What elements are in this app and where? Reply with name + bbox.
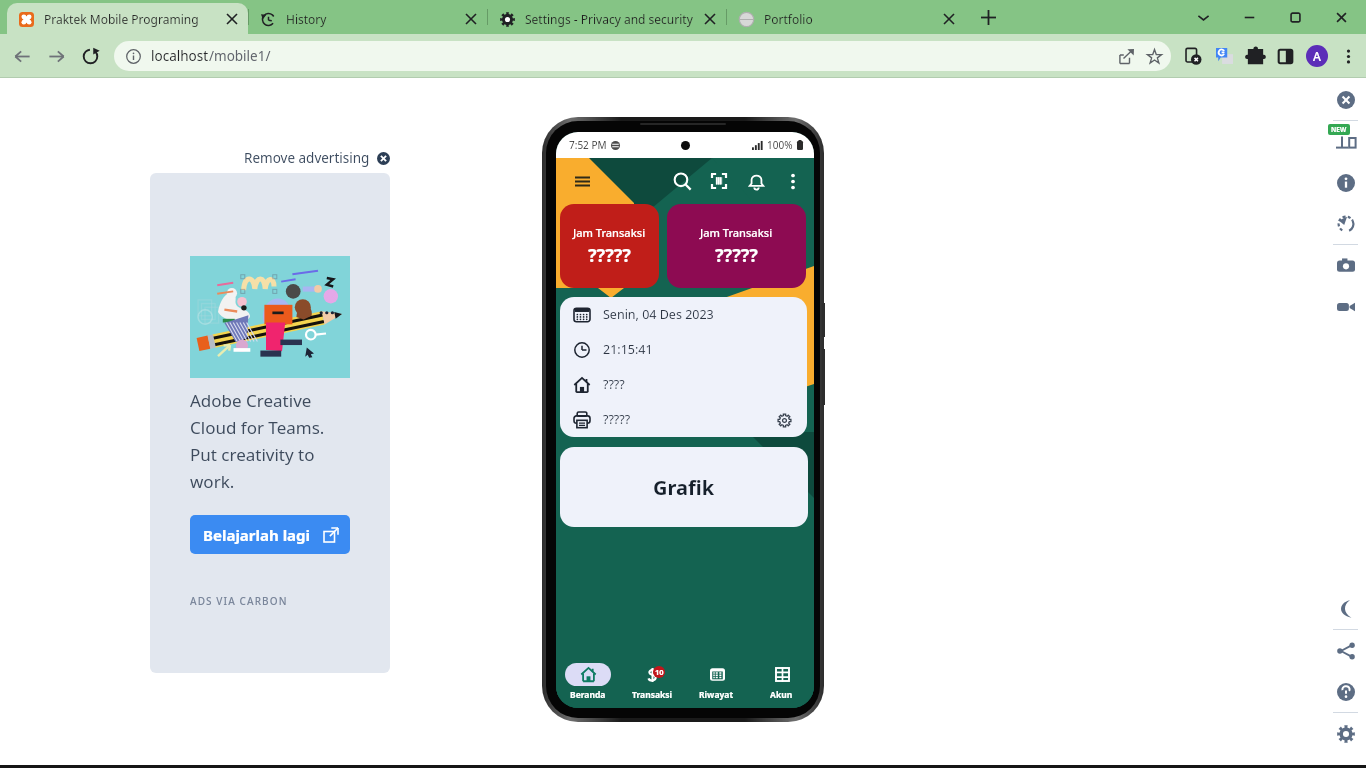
button[interactable]: Close tab bbox=[459, 7, 483, 31]
button[interactable]: Belajarlah lagi bbox=[190, 515, 350, 554]
button[interactable]: Search bbox=[667, 166, 697, 196]
staticText: Riwayat bbox=[699, 689, 734, 701]
button[interactable]: Profile bbox=[1302, 41, 1332, 71]
button[interactable]: 10 bbox=[620, 656, 684, 708]
button[interactable]: Forward bbox=[42, 42, 70, 70]
staticText: Jam Transaksi bbox=[573, 225, 646, 240]
button[interactable]: More options bbox=[778, 166, 808, 196]
button[interactable]: Share bbox=[1112, 42, 1140, 70]
button[interactable]: Close tab bbox=[220, 7, 244, 31]
button[interactable]: History bbox=[249, 3, 487, 34]
button[interactable]: Share bbox=[1325, 630, 1366, 671]
button[interactable]: Portfolio bbox=[727, 3, 965, 34]
button[interactable]: Close tab bbox=[698, 7, 722, 31]
staticText: Transaksi bbox=[632, 689, 673, 701]
button[interactable]: ????? bbox=[560, 402, 807, 437]
button[interactable]: Jam Transaksi bbox=[560, 204, 659, 288]
button[interactable]: Blocked bbox=[1179, 42, 1207, 70]
button[interactable]: Close tab bbox=[937, 7, 961, 31]
button[interactable]: More bbox=[1334, 42, 1362, 70]
button[interactable]: Bookmark bbox=[1140, 42, 1168, 70]
button[interactable]: Extensions bbox=[1241, 42, 1269, 70]
button[interactable]: Minimize bbox=[1226, 0, 1272, 34]
button[interactable]: Dark mode bbox=[1325, 588, 1366, 629]
button[interactable]: Grafik bbox=[560, 447, 808, 527]
staticText: 10 bbox=[655, 667, 664, 677]
staticText: 21:15:41 bbox=[603, 341, 653, 358]
button[interactable]: Side panel bbox=[1271, 42, 1299, 70]
staticText: Belajarlah lagi bbox=[203, 525, 311, 545]
button[interactable]: New tab bbox=[973, 2, 1003, 32]
button[interactable]: Akun bbox=[749, 656, 814, 708]
button[interactable]: Information bbox=[1325, 162, 1366, 203]
button[interactable]: Menu bbox=[569, 168, 595, 194]
staticText: NEW bbox=[1331, 125, 1347, 134]
staticText: 7:52 PM bbox=[569, 138, 607, 152]
staticText: Remove advertising bbox=[244, 149, 370, 167]
staticText: ????? bbox=[603, 411, 631, 428]
button[interactable]: Senin, 04 Des 2023 bbox=[560, 297, 807, 332]
button[interactable]: Record video bbox=[1325, 286, 1366, 327]
button[interactable]: Reload bbox=[76, 42, 104, 70]
staticText: A bbox=[1313, 48, 1321, 64]
button[interactable]: Settings bbox=[774, 410, 794, 430]
button[interactable]: Settings bbox=[1325, 713, 1366, 754]
staticText: Settings - Privacy and security bbox=[525, 11, 698, 27]
staticText: Jam Transaksi bbox=[700, 225, 773, 240]
staticText: History bbox=[286, 11, 459, 27]
button[interactable]: Device toolbar bbox=[1325, 121, 1366, 162]
button[interactable]: Riwayat bbox=[684, 656, 749, 708]
button[interactable]: Tab search bbox=[1180, 0, 1226, 34]
button[interactable]: 21:15:41 bbox=[560, 332, 807, 367]
button[interactable]: Reset bbox=[1325, 203, 1366, 244]
button[interactable]: Jam Transaksi bbox=[667, 204, 806, 288]
button[interactable]: Scan bbox=[704, 166, 734, 196]
button[interactable]: Screenshot bbox=[1325, 245, 1366, 286]
button[interactable]: localhost bbox=[114, 41, 1171, 71]
staticText: ????? bbox=[588, 243, 631, 268]
button[interactable]: Remove advertising bbox=[150, 145, 390, 171]
button[interactable]: Notifications bbox=[741, 166, 771, 196]
staticText: ???? bbox=[603, 376, 625, 393]
button[interactable]: Translate bbox=[1209, 41, 1239, 71]
staticText: Senin, 04 Des 2023 bbox=[603, 306, 714, 323]
staticText: Grafik bbox=[653, 474, 715, 501]
staticText: localhost bbox=[151, 47, 209, 65]
button[interactable]: ???? bbox=[560, 367, 807, 402]
button[interactable]: Close bbox=[1325, 79, 1366, 120]
staticText: Portfolio bbox=[764, 11, 937, 27]
staticText: /mobile1/ bbox=[209, 47, 271, 65]
staticText: Beranda bbox=[570, 689, 606, 701]
staticText: Praktek Mobile Programing bbox=[44, 11, 220, 27]
staticText: Akun bbox=[770, 689, 793, 701]
staticText: 100% bbox=[767, 138, 793, 152]
button[interactable]: Help bbox=[1325, 671, 1366, 712]
staticText: ADS VIA CARBON bbox=[190, 594, 288, 608]
button[interactable]: Close bbox=[1318, 0, 1364, 34]
staticText: Adobe Creative Cloud for Teams. Put crea… bbox=[190, 389, 350, 493]
staticText: ????? bbox=[715, 243, 758, 268]
button[interactable]: Praktek Mobile Programing bbox=[7, 3, 248, 34]
button[interactable]: Maximize bbox=[1272, 0, 1318, 34]
button[interactable]: Beranda bbox=[556, 656, 620, 708]
button[interactable]: Back bbox=[8, 42, 36, 70]
button[interactable]: Settings - Privacy and security bbox=[488, 3, 726, 34]
